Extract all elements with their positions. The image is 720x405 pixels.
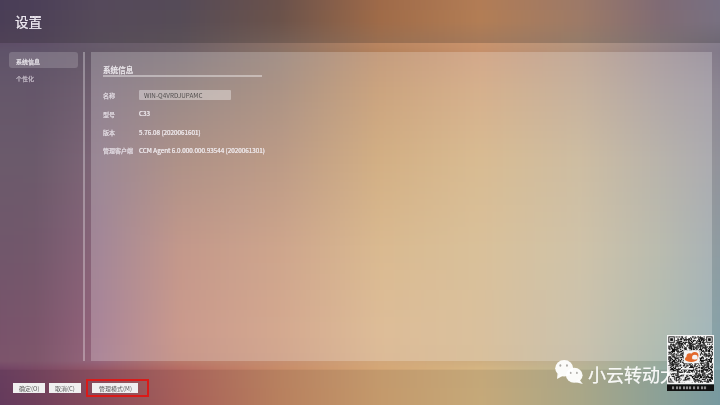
button[interactable]: 系统信息 bbox=[9, 52, 78, 68]
staticText: 取消(C) bbox=[55, 384, 75, 393]
staticText: 设置 bbox=[15, 11, 42, 31]
button[interactable]: 管理模式(M) bbox=[92, 383, 138, 393]
staticText: 系统信息 bbox=[16, 57, 41, 66]
staticText: 型号 bbox=[103, 110, 116, 119]
staticText: 确定(O) bbox=[19, 384, 40, 393]
staticText: C33 bbox=[139, 109, 151, 118]
staticText: 个性化 bbox=[16, 74, 35, 83]
other: QR code bbox=[667, 335, 714, 391]
staticText: 小云转动大云 bbox=[588, 361, 696, 387]
staticText: 管理模式(M) bbox=[99, 384, 132, 393]
staticText: CCM Agent 6.0.000.000.93544 (2020061301) bbox=[139, 146, 265, 155]
button[interactable]: 个性化 bbox=[9, 69, 78, 85]
staticText: WIN-Q4VRDJUPAMC bbox=[144, 91, 203, 100]
staticText: 管理客户端 bbox=[103, 146, 134, 155]
staticText: 名称 bbox=[103, 91, 116, 100]
other: WeChat bbox=[554, 359, 584, 384]
button[interactable]: 取消(C) bbox=[49, 383, 81, 393]
button[interactable]: 确定(O) bbox=[13, 383, 45, 393]
staticText: 版本 bbox=[103, 128, 116, 137]
staticText: 系统信息 bbox=[103, 64, 134, 75]
button[interactable]: WIN-Q4VRDJUPAMC bbox=[139, 90, 231, 100]
staticText: 5.76.08 (2020061601) bbox=[139, 128, 201, 137]
